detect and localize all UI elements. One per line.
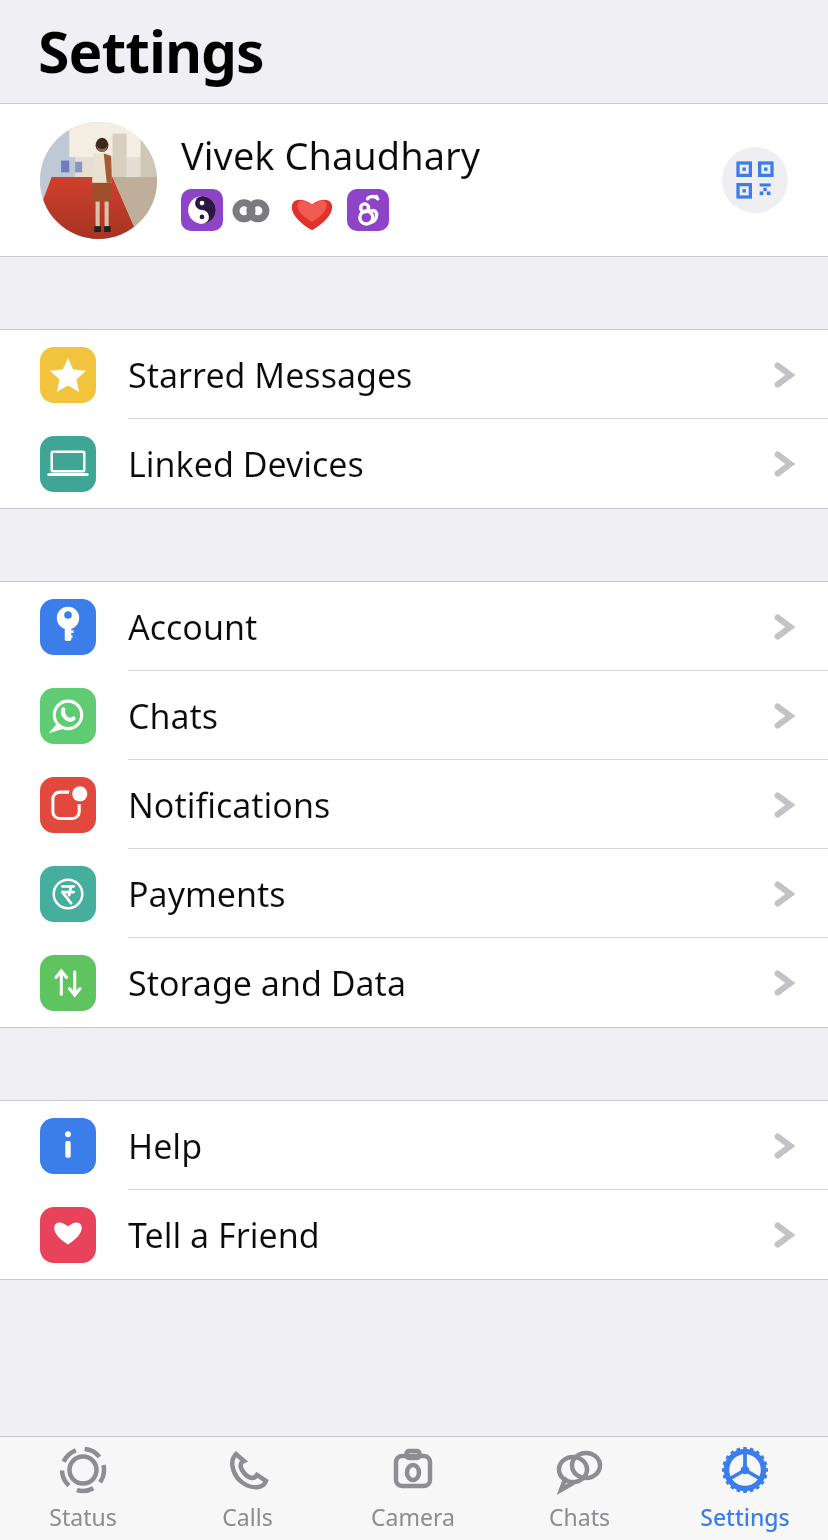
staticText: Starred Messages	[128, 352, 774, 398]
button[interactable]: Help	[0, 1101, 828, 1190]
staticText: Help	[128, 1123, 774, 1169]
staticText: Chats	[128, 693, 774, 739]
staticText: Calls	[222, 1501, 273, 1532]
button[interactable]: Notifications	[0, 760, 828, 849]
button[interactable]: Chats	[496, 1437, 662, 1540]
button[interactable]: Settings	[662, 1437, 828, 1540]
staticText: Settings	[38, 12, 264, 90]
staticText: Status	[49, 1501, 117, 1532]
staticText: Account	[128, 604, 774, 650]
staticText: Storage and Data	[128, 960, 774, 1006]
staticText: Camera	[371, 1501, 455, 1532]
button[interactable]: Status	[0, 1437, 165, 1540]
button[interactable]: Starred Messages	[0, 330, 828, 419]
button[interactable]: Camera	[330, 1437, 496, 1540]
button[interactable]: Linked Devices	[0, 419, 828, 508]
button[interactable]: Chats	[0, 671, 828, 760]
staticText: Notifications	[128, 782, 774, 828]
button[interactable]: QR code	[722, 147, 788, 213]
staticText: Tell a Friend	[128, 1212, 774, 1258]
button[interactable]: Tell a Friend	[0, 1190, 828, 1279]
staticText: Settings	[700, 1501, 790, 1532]
staticText: Linked Devices	[128, 441, 774, 487]
staticText: Vivek Chaudhary	[181, 129, 481, 181]
button[interactable]: Storage and Data	[0, 938, 828, 1027]
button[interactable]: Calls	[165, 1437, 330, 1540]
button[interactable]: Account	[0, 582, 828, 671]
staticText: Payments	[128, 871, 774, 917]
staticText: Chats	[549, 1501, 610, 1532]
button[interactable]: Vivek Chaudhary	[0, 104, 828, 256]
button[interactable]: Payments	[0, 849, 828, 938]
